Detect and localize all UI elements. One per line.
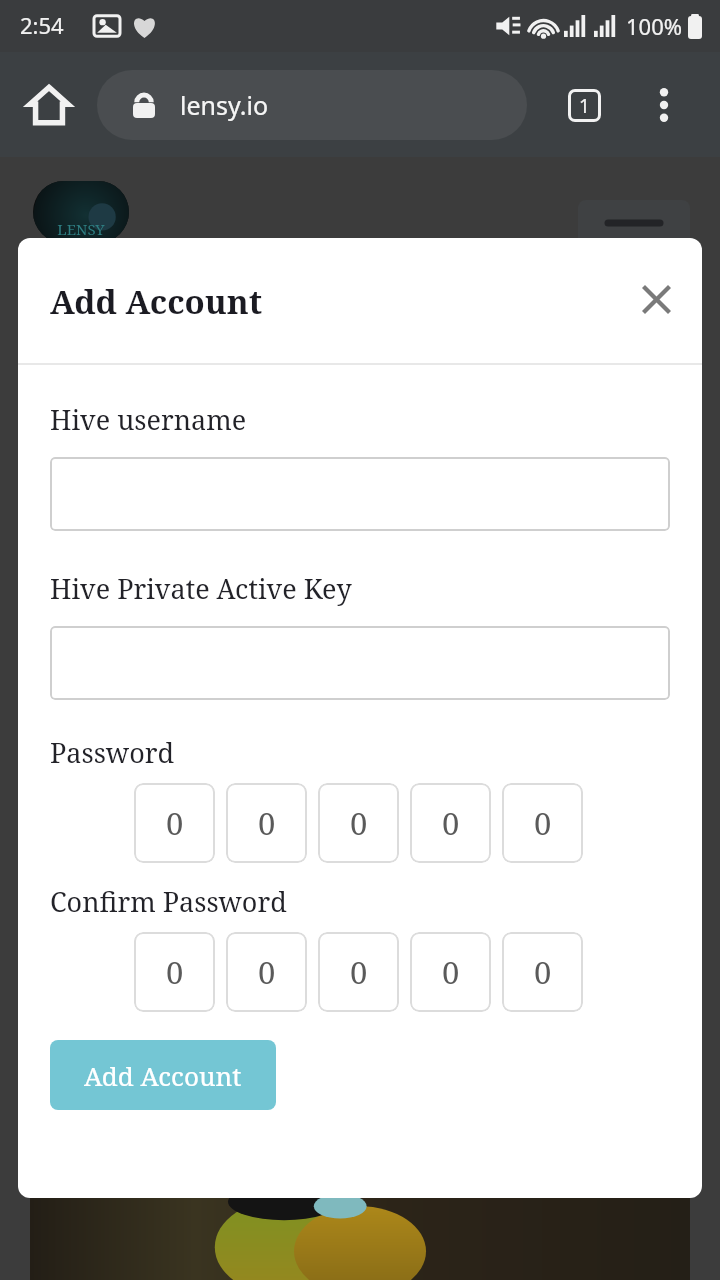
button[interactable]: Add Account <box>50 1040 276 1110</box>
staticText: Hive Private Active Key <box>50 570 352 607</box>
staticText: Add Account <box>50 279 263 324</box>
button[interactable]: Close <box>630 273 682 325</box>
button[interactable]: 0 <box>410 783 491 863</box>
staticText: 0 <box>350 802 368 844</box>
staticText: LENSY <box>57 219 105 239</box>
button[interactable]: Home <box>22 78 76 132</box>
button[interactable]: 0 <box>502 932 583 1012</box>
staticText: 0 <box>534 802 552 844</box>
button[interactable]: 0 <box>318 932 399 1012</box>
button[interactable]: 0 <box>134 783 215 863</box>
staticText: 0 <box>350 951 368 993</box>
staticText: Password <box>50 734 175 771</box>
button[interactable]: 0 <box>502 783 583 863</box>
button[interactable]: Menu <box>578 200 690 260</box>
staticText: 2:54 <box>20 10 64 40</box>
button[interactable]: 0 <box>134 932 215 1012</box>
button[interactable]: 0 <box>410 932 491 1012</box>
button[interactable] <box>50 457 670 531</box>
button[interactable]: More options <box>638 79 690 131</box>
button[interactable]: 0 <box>226 932 307 1012</box>
staticText: 0 <box>258 951 276 993</box>
button[interactable]: 0 <box>226 783 307 863</box>
button[interactable]: 0 <box>318 783 399 863</box>
staticText: 0 <box>534 951 552 993</box>
staticText: 1 <box>579 93 590 119</box>
staticText: Add Account <box>84 1058 242 1093</box>
staticText: 100% <box>626 11 683 41</box>
staticText: 0 <box>166 802 184 844</box>
staticText: Hive username <box>50 401 247 438</box>
staticText: 0 <box>166 951 184 993</box>
staticText: Confirm Password <box>50 883 287 920</box>
button[interactable]: lensy.io <box>97 70 527 140</box>
staticText: 0 <box>442 802 460 844</box>
button[interactable]: Tabs <box>556 77 612 133</box>
staticText: 0 <box>442 951 460 993</box>
button[interactable] <box>50 626 670 700</box>
staticText: lensy.io <box>180 88 269 122</box>
staticText: 0 <box>258 802 276 844</box>
